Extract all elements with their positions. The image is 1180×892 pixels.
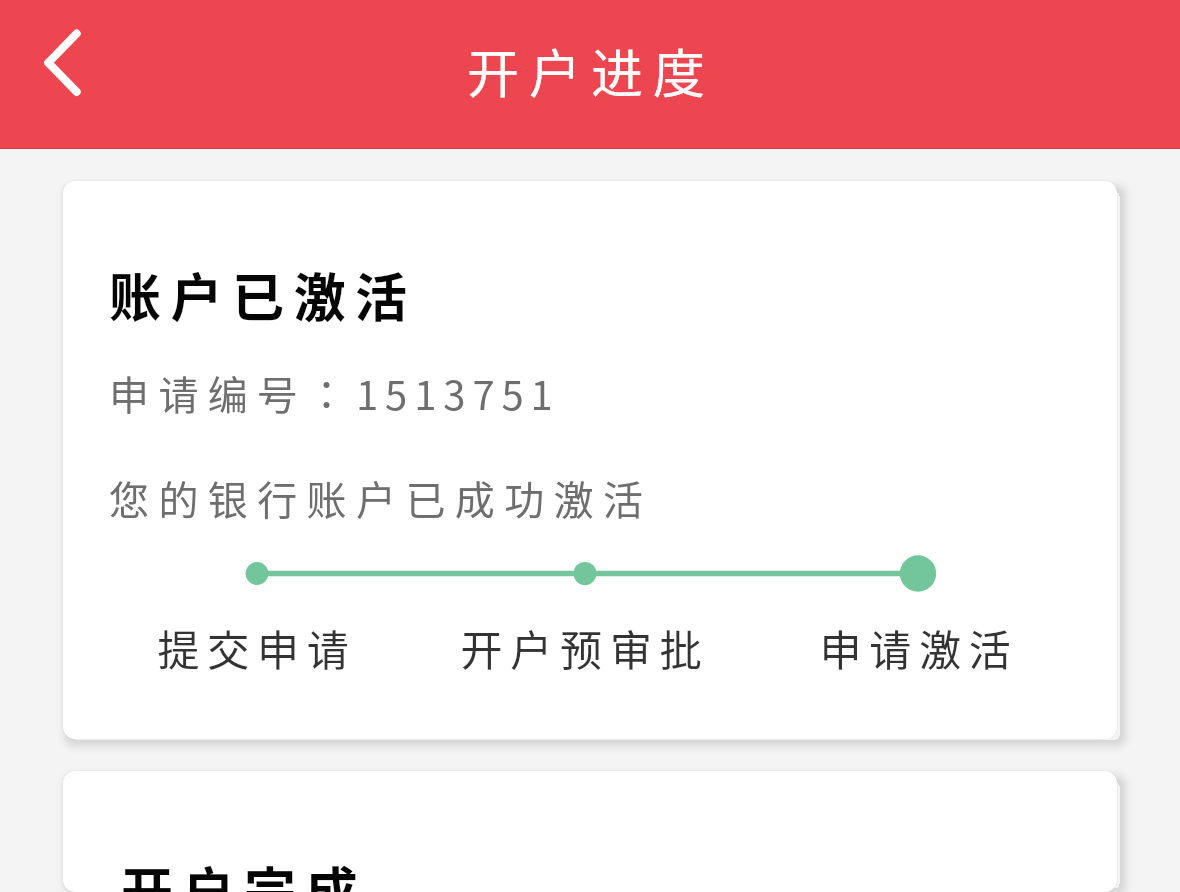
button[interactable]: 开户完成 bbox=[63, 771, 1117, 892]
staticText: 账户已激活 bbox=[109, 257, 417, 332]
button[interactable]: Back bbox=[0, 0, 110, 149]
staticText: 您的银行账户已成功激活 bbox=[109, 469, 653, 527]
button[interactable]: 提交申请 bbox=[92, 617, 422, 678]
button[interactable]: 账户已激活 bbox=[63, 181, 1117, 739]
staticText: 申请编号：1513751 bbox=[109, 364, 560, 422]
button[interactable]: 开户预审批 bbox=[420, 617, 750, 678]
button[interactable]: 申请激活 bbox=[754, 617, 1084, 678]
staticText: 开户进度 bbox=[467, 33, 716, 108]
staticText: 开户完成 bbox=[121, 851, 368, 892]
